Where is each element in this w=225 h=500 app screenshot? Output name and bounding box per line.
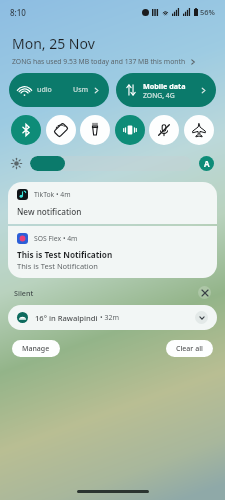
staticText: Clear all <box>176 344 203 354</box>
button[interactable]: Flashlight <box>80 115 110 145</box>
staticText: 56% <box>200 7 215 17</box>
staticText: Manage <box>22 344 50 354</box>
button[interactable]: Auto brightness <box>199 156 214 171</box>
staticText: Silent <box>14 288 34 298</box>
staticText: A <box>204 158 210 169</box>
button[interactable]: udio <box>9 73 109 107</box>
button[interactable]: 16° in Rawalpindi <box>8 305 217 330</box>
staticText: 16° in Rawalpindi <box>35 313 98 323</box>
staticText: udio <box>37 85 52 95</box>
button[interactable]: Vibrate <box>115 115 145 145</box>
button[interactable]: Mute microphone <box>149 115 179 145</box>
staticText: SOS Flex • 4m <box>34 234 78 243</box>
staticText: Usm <box>73 85 89 95</box>
button[interactable]: TikTok • 4m <box>8 182 217 224</box>
button[interactable]: Mobile data <box>116 73 216 107</box>
button[interactable]: SOS Flex • 4m <box>8 226 217 278</box>
button[interactable]: ZONG has used 9.53 MB today and 137 MB t… <box>12 56 196 67</box>
button[interactable]: Clear all <box>166 340 213 357</box>
staticText: 8:10 <box>10 7 26 18</box>
button[interactable]: Auto rotate <box>46 115 76 145</box>
staticText: Mobile data <box>143 81 186 91</box>
button[interactable]: Airplane mode <box>184 115 214 145</box>
button[interactable] <box>30 156 191 171</box>
button[interactable]: Bluetooth <box>11 115 41 145</box>
staticText: This is Test Notification <box>17 249 113 260</box>
staticText: This is Test Notification <box>17 261 98 271</box>
staticText: New notification <box>17 206 82 217</box>
staticText: Mon, 25 Nov <box>12 34 95 53</box>
staticText: TikTok • 4m <box>34 190 71 199</box>
button[interactable]: Clear silent notifications <box>198 286 211 299</box>
staticText: ZONG has used 9.53 MB today and 137 MB t… <box>12 57 186 66</box>
button[interactable]: Manage <box>12 340 60 357</box>
staticText: ZONG, 4G <box>143 91 175 100</box>
staticText: • 32m <box>100 313 120 323</box>
